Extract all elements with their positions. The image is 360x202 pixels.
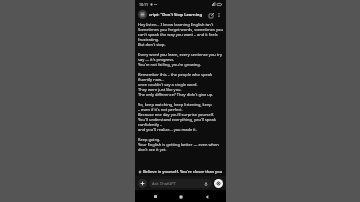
button[interactable]: Menu [138,10,147,19]
button[interactable]: Ask ChatGPT [149,179,212,188]
staticText: The only difference? They didn't give up… [138,92,214,97]
staticText: Keep going. [138,137,161,142]
staticText: They were just like you. [138,87,182,92]
staticText: don't see it yet. [138,147,167,152]
button[interactable]: New chat [207,11,215,19]
staticText: confidently – [138,122,162,127]
staticText: Ask ChatGPT [152,181,203,186]
staticText: You're not failing, you're growing. [138,62,201,67]
staticText: Remember this – the people who speak Eng… [138,72,223,77]
staticText: can't speak the way you want – and it fe… [138,32,218,37]
staticText: say — it's progress. [138,57,175,62]
staticText: – even if it's not perfect. [138,107,183,112]
button[interactable]: More options [215,11,223,19]
button[interactable]: Home [175,191,186,202]
staticText: cript: "Don't Stop Learning English" [149,12,206,18]
staticText: You'll understand everything, you'll spe… [138,117,216,122]
button[interactable]: Back [201,191,212,202]
button[interactable]: Add attachment [138,179,147,188]
staticText: Every word you learn, every sentence you… [138,52,223,57]
button[interactable]: Voice mode [214,179,223,188]
staticText: Your English is getting better — even wh… [138,142,223,147]
button[interactable]: Voice input [203,181,209,187]
staticText: once couldn't say a single word. [138,82,198,87]
staticText: Sometimes you forget words, sometimes yo… [138,27,223,32]
staticText: frustrating. [138,37,160,42]
staticText: 10:11 [139,2,148,7]
staticText: So, keep watching, keep listening, keep … [138,102,223,107]
staticText: But don't stop. [138,42,166,47]
staticText: Because one day you'll surprise yourself… [138,112,215,117]
staticText: Believe in yourself. You're closer than … [143,169,223,174]
staticText: fluently now… [138,77,165,82]
staticText: Hey listen… I know learning English isn'… [138,22,223,27]
button[interactable]: Recent apps [150,191,161,202]
staticText: and you'll realize… you made it. [138,127,197,132]
